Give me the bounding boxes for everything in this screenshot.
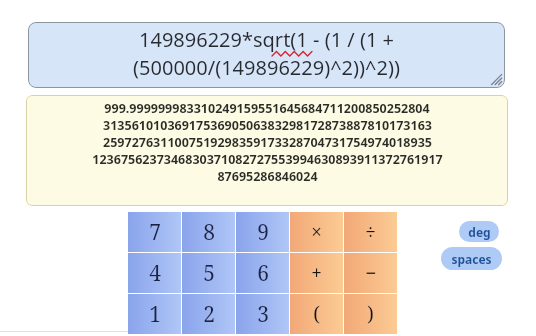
button[interactable]: ÷: [344, 212, 397, 252]
button[interactable]: ×: [290, 212, 343, 252]
staticText: ×: [311, 219, 322, 245]
staticText: 3135610103691753690506383298172873887810…: [103, 117, 432, 134]
button[interactable]: 3: [236, 294, 289, 334]
staticText: 2597276311007519298359173328704731754974…: [103, 134, 432, 151]
staticText: 999.999999983310249159551645684711200850…: [104, 100, 430, 117]
staticText: 7: [149, 218, 161, 247]
button[interactable]: deg: [459, 221, 499, 242]
staticText: ÷: [365, 219, 376, 245]
staticText: 9: [257, 218, 269, 247]
staticText: 8: [203, 218, 215, 247]
button[interactable]: 999.999999983310249159551645684711200850…: [26, 95, 508, 206]
staticText: 3: [257, 300, 269, 329]
button[interactable]: +: [290, 253, 343, 293]
button[interactable]: 7: [128, 212, 181, 252]
other: Resize: [490, 73, 502, 85]
button[interactable]: 9: [236, 212, 289, 252]
button[interactable]: (: [290, 294, 343, 334]
staticText: deg: [468, 224, 491, 240]
staticText: ): [367, 301, 374, 327]
staticText: +: [311, 260, 322, 286]
staticText: spaces: [451, 251, 492, 267]
staticText: −: [365, 260, 377, 286]
staticText: 6: [257, 259, 269, 288]
button[interactable]: 2: [182, 294, 235, 334]
staticText: 1236756237346830371082727553994630893911…: [92, 151, 443, 168]
button[interactable]: 149896229*sqrt(1 - (1 / (1 +: [28, 22, 505, 88]
button[interactable]: ): [344, 294, 397, 334]
button[interactable]: 5: [182, 253, 235, 293]
button[interactable]: spaces: [441, 247, 502, 270]
button[interactable]: −: [344, 253, 397, 293]
staticText: 5: [203, 259, 215, 288]
staticText: (: [313, 301, 320, 327]
button[interactable]: 4: [128, 253, 181, 293]
staticText: 1: [149, 300, 161, 329]
staticText: 87695286846024: [217, 168, 318, 185]
staticText: 4: [149, 259, 161, 288]
staticText: 149896229*sqrt(1 - (1 / (1 +: [139, 26, 394, 53]
button[interactable]: 1: [128, 294, 181, 334]
staticText: 2: [203, 300, 215, 329]
button[interactable]: 6: [236, 253, 289, 293]
staticText: (500000/(149896229)^2))^2)): [133, 54, 400, 81]
button[interactable]: 8: [182, 212, 235, 252]
